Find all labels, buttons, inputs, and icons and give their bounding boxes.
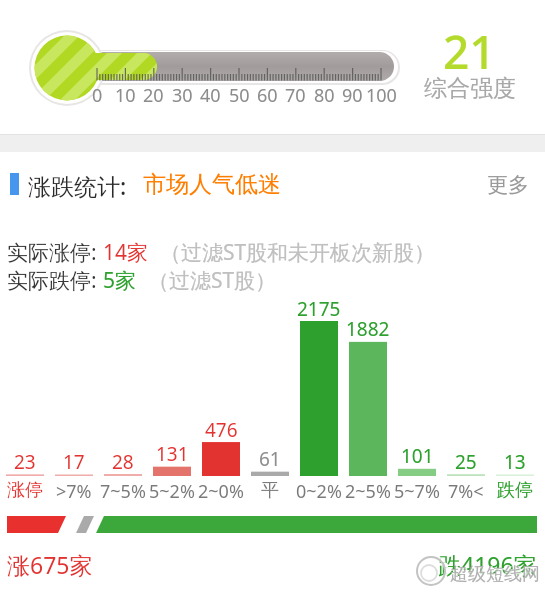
staticText: 涨停 bbox=[7, 479, 43, 502]
staticText: 更多 bbox=[487, 172, 529, 198]
staticText: 平 bbox=[261, 479, 279, 502]
staticText: 2~0% bbox=[198, 479, 244, 504]
staticText: 跌停 bbox=[497, 479, 533, 502]
staticText: 476 bbox=[205, 417, 238, 443]
staticText: 21 bbox=[443, 20, 496, 83]
staticText: 实际跌停: bbox=[7, 266, 103, 295]
staticText: 60 bbox=[257, 83, 278, 108]
staticText: 61 bbox=[259, 446, 281, 472]
staticText: 28 bbox=[112, 449, 134, 475]
staticText: 涨675家 bbox=[7, 549, 93, 580]
staticText: 10 bbox=[115, 83, 136, 108]
staticText: 实际涨停: bbox=[7, 238, 103, 267]
staticText: 5家 bbox=[103, 266, 137, 295]
staticText: 131 bbox=[156, 441, 189, 467]
staticText: 市场人气低迷 bbox=[143, 170, 281, 199]
staticText: 20 bbox=[143, 83, 164, 108]
staticText: 101 bbox=[401, 443, 434, 469]
staticText: 80 bbox=[314, 83, 335, 108]
staticText: 5~2% bbox=[149, 479, 195, 504]
staticText: 2175 bbox=[297, 296, 341, 322]
staticText: （过滤ST股） bbox=[137, 266, 277, 295]
staticText: 90 bbox=[342, 83, 363, 108]
staticText: 50 bbox=[229, 83, 250, 108]
staticText: 超级短线网 bbox=[450, 563, 540, 586]
staticText: 5~7% bbox=[394, 479, 440, 504]
staticText: 2~5% bbox=[345, 479, 391, 504]
staticText: 70 bbox=[285, 83, 306, 108]
staticText: 14家 bbox=[103, 238, 149, 267]
staticText: 40 bbox=[200, 83, 221, 108]
staticText: 7~5% bbox=[100, 479, 146, 504]
staticText: 跌4196家 bbox=[438, 549, 537, 580]
staticText: 综合强度 bbox=[424, 74, 516, 103]
staticText: 1882 bbox=[346, 316, 390, 342]
staticText: 0~2% bbox=[296, 479, 342, 504]
staticText: 0 bbox=[92, 83, 103, 108]
staticText: 13 bbox=[504, 449, 526, 475]
staticText: 30 bbox=[172, 83, 193, 108]
staticText: 17 bbox=[63, 449, 85, 475]
staticText: >7% bbox=[56, 479, 92, 504]
staticText: 超级短线网 bbox=[451, 564, 541, 587]
staticText: （过滤ST股和未开板次新股） bbox=[149, 238, 436, 267]
staticText: 涨跌统计: bbox=[28, 170, 127, 201]
staticText: 100 bbox=[366, 83, 397, 108]
staticText: 7%< bbox=[448, 479, 484, 504]
staticText: 23 bbox=[14, 449, 36, 475]
staticText: 25 bbox=[455, 449, 477, 475]
